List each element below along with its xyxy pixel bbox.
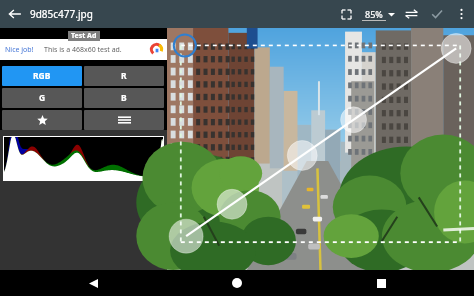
staticText: 85% [365, 8, 383, 20]
button[interactable]: B [84, 88, 164, 108]
button[interactable]: Favorite preset [2, 110, 82, 130]
button[interactable]: G [2, 88, 82, 108]
staticText: Nice job! [5, 45, 34, 55]
button[interactable]: 85% [359, 8, 398, 21]
button[interactable]: Home [215, 270, 259, 296]
staticText: B [121, 92, 127, 104]
button[interactable]: RGB [2, 66, 82, 86]
staticText: RGB [33, 70, 51, 82]
staticText: G [39, 92, 46, 104]
button[interactable]: Compare [398, 0, 424, 28]
staticText: This is a 468x60 test ad. [44, 45, 122, 55]
button[interactable]: More options [450, 0, 472, 28]
button[interactable]: Crop [333, 0, 359, 28]
button[interactable]: Recents [359, 270, 403, 296]
staticText: 9d85c477.jpg [30, 7, 93, 21]
button[interactable]: R [84, 66, 164, 86]
button[interactable]: Menu [84, 110, 164, 130]
button[interactable]: Apply [424, 0, 450, 28]
button[interactable]: Back [71, 270, 115, 296]
button[interactable]: Back [0, 0, 30, 28]
staticText: R [121, 70, 127, 82]
staticText: Test Ad [71, 31, 97, 41]
